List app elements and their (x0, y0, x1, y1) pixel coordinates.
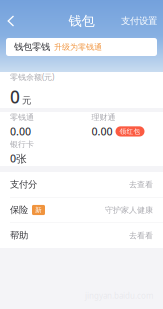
staticText: 0.00 (10, 124, 31, 138)
button[interactable]: 零钱通 (0, 112, 81, 139)
staticText: 升级为零钱通 (54, 42, 102, 52)
staticText: 领红包 (119, 127, 140, 135)
button[interactable]: 钱包零钱 (0, 38, 163, 56)
button[interactable]: 帮助 (0, 223, 163, 248)
staticText: 0 (10, 85, 20, 108)
button[interactable]: 支付分 (0, 172, 163, 197)
staticText: 钱包 (68, 13, 94, 29)
staticText: 元 (22, 95, 31, 106)
staticText: 帮助 (10, 230, 28, 241)
staticText: 去查看 (129, 180, 153, 189)
button[interactable]: 理财通 (81, 112, 163, 139)
staticText: 0.00 (91, 124, 112, 138)
staticText: jingyan.baidu.com (85, 290, 153, 301)
staticText: 零钱通 (10, 112, 34, 122)
staticText: 去看看 (129, 231, 153, 240)
staticText: 理财通 (91, 112, 115, 122)
staticText: 支付分 (10, 179, 37, 190)
button[interactable]: Back (0, 10, 23, 32)
staticText: 银行卡 (10, 139, 34, 149)
staticText: 支付设置 (121, 15, 157, 27)
button[interactable]: 保险 (0, 197, 163, 222)
staticText: 保险 (10, 204, 28, 216)
staticText: 钱包零钱 (14, 41, 50, 53)
staticText: 0张 (10, 151, 27, 165)
button[interactable]: 零钱余额(元) (0, 72, 163, 108)
button[interactable]: 银行卡 (0, 139, 81, 166)
button[interactable]: 支付设置 (115, 10, 163, 32)
staticText: 新 (35, 206, 42, 214)
staticText: 零钱余额(元) (10, 72, 54, 82)
staticText: 守护家人健康 (105, 205, 153, 215)
